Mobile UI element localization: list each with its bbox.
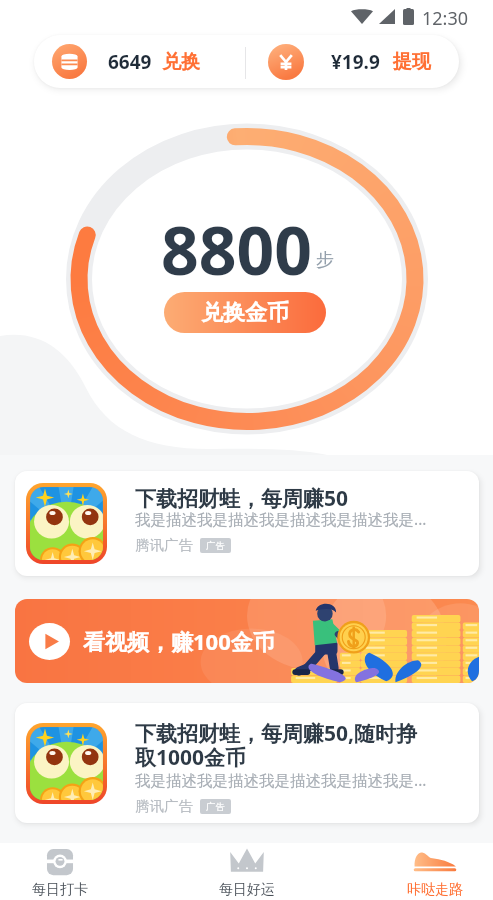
button[interactable]: 兑换金币	[164, 292, 326, 333]
staticText: 下载招财蛙，每周赚50	[135, 484, 349, 513]
staticText: 每日好运	[219, 881, 275, 899]
button[interactable]: 下载招财蛙，每周赚50,随时挣	[15, 703, 479, 823]
button[interactable]: 每日好运	[209, 845, 285, 900]
staticText: 腾讯广告	[135, 536, 193, 554]
staticText: 下载招财蛙，每周赚50,随时挣	[135, 719, 418, 748]
staticText: 腾讯广告	[135, 797, 193, 815]
staticText: 我是描述我是描述我是描述我是描述我是...	[135, 769, 427, 790]
staticText: 兑换金币	[201, 299, 289, 327]
button[interactable]: 下载招财蛙，每周赚50	[15, 471, 479, 576]
staticText: 12:30	[422, 6, 469, 26]
button[interactable]: 看视频，赚100金币	[15, 599, 479, 683]
button[interactable]: ¥19.9	[268, 35, 431, 88]
staticText: 提现	[393, 50, 431, 74]
staticText: 每日打卡	[32, 881, 88, 899]
staticText: 8800	[161, 204, 313, 294]
staticText: 看视频，赚100金币	[83, 626, 275, 656]
staticText: ¥19.9	[331, 49, 380, 75]
staticText: 取1000金币	[135, 743, 247, 772]
staticText: 兑换	[162, 50, 200, 74]
staticText: 我是描述我是描述我是描述我是描述我是...	[135, 508, 427, 529]
staticText: 6649	[108, 49, 152, 75]
staticText: 咔哒走路	[407, 881, 463, 899]
button[interactable]: 6649	[52, 35, 200, 88]
button[interactable]: 咔哒走路	[397, 845, 473, 900]
button[interactable]: 每日打卡	[22, 845, 98, 900]
staticText: 广告	[206, 540, 225, 552]
staticText: 步	[316, 249, 334, 272]
staticText: 广告	[206, 801, 225, 813]
